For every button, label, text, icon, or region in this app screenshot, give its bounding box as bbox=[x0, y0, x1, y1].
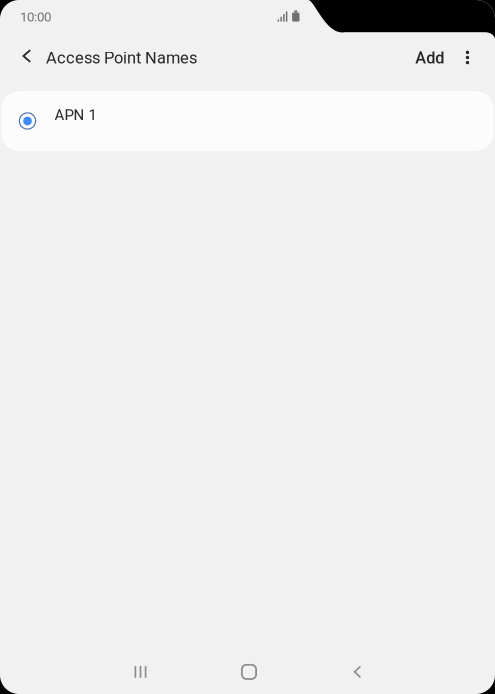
staticText: Add bbox=[415, 48, 444, 67]
button[interactable]: Navigate back bbox=[16, 31, 38, 77]
button[interactable]: Add bbox=[407, 31, 452, 77]
staticText: APN 1 bbox=[54, 106, 96, 124]
staticText: 10:00 bbox=[20, 9, 51, 25]
button[interactable]: Back bbox=[335, 650, 379, 694]
button[interactable]: Home bbox=[227, 650, 271, 694]
button[interactable]: More options bbox=[458, 31, 476, 77]
staticText: Access Point Names bbox=[46, 48, 197, 68]
button[interactable]: APN 1 bbox=[1, 91, 493, 151]
button[interactable]: Recent apps bbox=[118, 650, 162, 694]
